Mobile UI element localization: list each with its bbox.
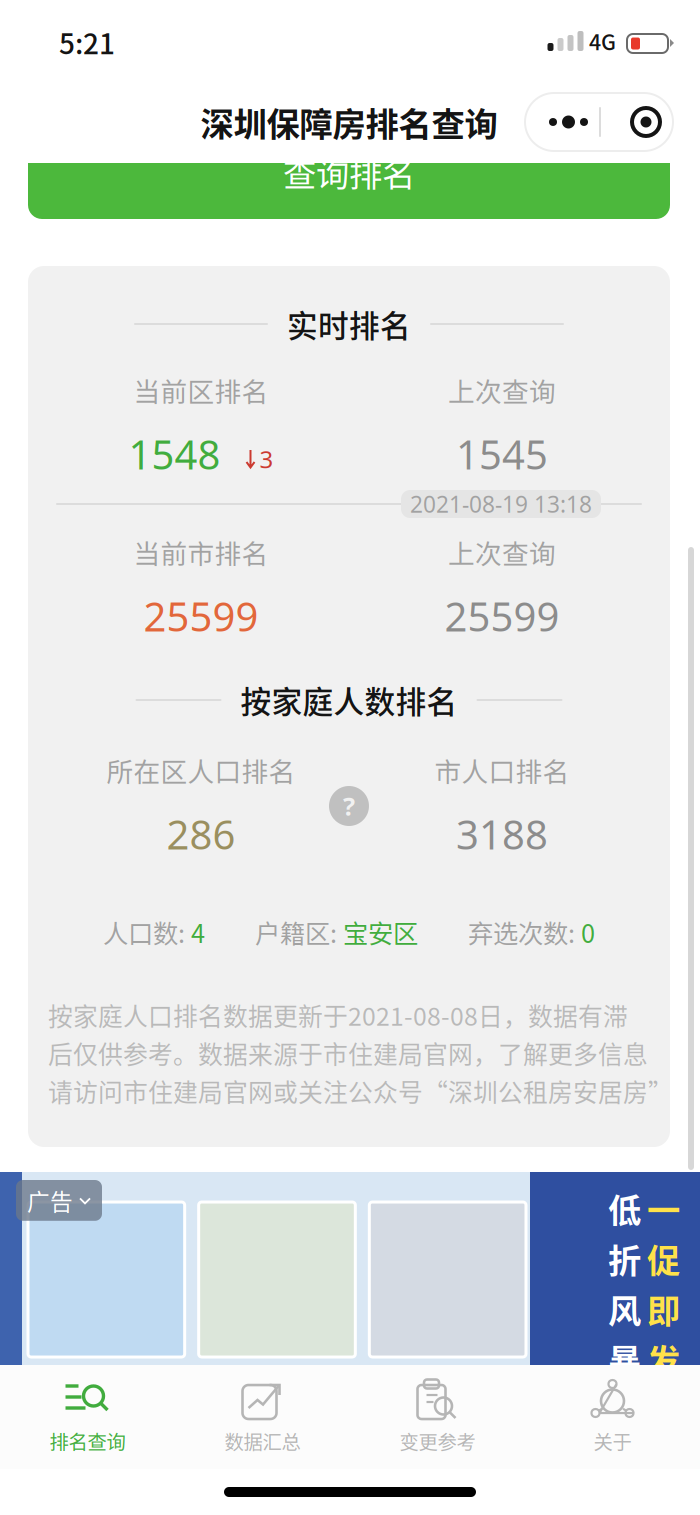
staticText: 1545	[456, 427, 548, 481]
staticText: 变更参考	[399, 1427, 475, 1455]
staticText: 一	[647, 1184, 680, 1232]
staticText: 按家庭人口排名数据更新于2021-08-08日，数据有滞	[48, 997, 628, 1033]
staticText: 暴	[608, 1335, 641, 1383]
staticText: 风	[608, 1284, 641, 1333]
button[interactable]: 排名查询	[0, 1365, 175, 1469]
staticText: 宝安区	[337, 914, 418, 950]
staticText: 25599	[444, 589, 559, 643]
staticText: 关于	[593, 1427, 631, 1455]
staticText: 广告	[27, 1184, 73, 1217]
staticText: 所在区人口排名	[106, 751, 295, 789]
staticText: 请访问市住建局官网或关注公众号“深圳公租房安居房”	[48, 1073, 673, 1109]
staticText: 25599	[143, 589, 258, 643]
staticText: 0	[575, 914, 595, 950]
staticText: 市人口排名	[434, 751, 569, 789]
staticText: 后仅供参考。数据来源于市住建局官网，了解更多信息	[48, 1035, 648, 1071]
staticText: 折	[608, 1234, 641, 1283]
staticText: 当前市排名	[133, 533, 268, 571]
button[interactable]: Menu and Close	[525, 93, 673, 151]
button[interactable]: 查询排名	[28, 143, 670, 219]
button[interactable]: Help	[325, 782, 373, 830]
staticText: 弃选次数:	[468, 914, 575, 950]
staticText: 深圳保障房排名查询	[200, 98, 497, 146]
staticText: 上次查询	[448, 533, 556, 571]
staticText: 促	[647, 1234, 680, 1283]
staticText: 4	[185, 914, 205, 950]
button[interactable]: 数据汇总	[175, 1365, 350, 1469]
staticText: 排名查询	[49, 1427, 125, 1455]
staticText: 发	[647, 1335, 680, 1383]
button[interactable]: 关于	[525, 1365, 700, 1469]
button[interactable]: 变更参考	[350, 1365, 525, 1469]
staticText: 2021-08-19 13:18	[410, 489, 592, 519]
staticText: 286	[166, 807, 235, 861]
staticText: 按家庭人数排名	[240, 678, 457, 722]
staticText: 数据汇总	[224, 1427, 300, 1455]
staticText: 5:21	[59, 22, 115, 62]
staticText: ?	[343, 789, 355, 823]
button[interactable]: Advertisement	[0, 1172, 700, 1365]
staticText: 3188	[456, 807, 548, 861]
staticText: 人口数:	[103, 914, 185, 950]
staticText: 实时排名	[287, 302, 411, 346]
staticText: 1548	[128, 427, 220, 481]
staticText: 低	[608, 1184, 641, 1232]
staticText: 上次查询	[448, 371, 556, 409]
staticText: 3	[259, 443, 273, 475]
staticText: 即	[647, 1284, 680, 1333]
staticText: 查询排名	[283, 148, 415, 196]
staticText: 当前区排名	[133, 371, 268, 409]
staticText: 户籍区:	[255, 914, 337, 950]
staticText: 4G	[589, 26, 616, 56]
